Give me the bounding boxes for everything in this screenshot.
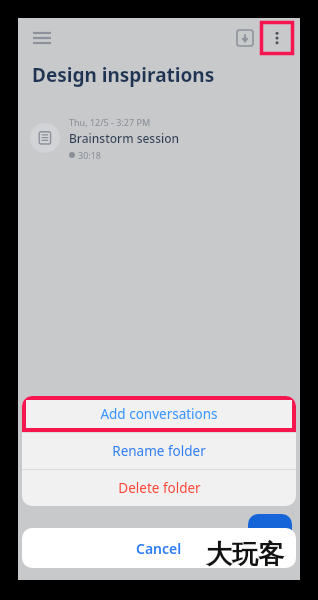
- button[interactable]: Delete folder: [22, 470, 296, 506]
- staticText: Delete folder: [118, 479, 201, 497]
- button[interactable]: Compose: [248, 514, 292, 536]
- button[interactable]: More options: [260, 21, 294, 55]
- staticText: Design inspirations: [32, 62, 215, 88]
- staticText: Brainstorm session: [69, 130, 180, 146]
- staticText: 大玩客: [206, 538, 284, 571]
- staticText: Cancel: [136, 539, 182, 558]
- staticText: Add conversations: [100, 405, 218, 423]
- button[interactable]: Menu: [26, 22, 58, 54]
- staticText: Rename folder: [112, 442, 206, 460]
- button[interactable]: Thu, 12/5 - 3:27 PM: [18, 110, 300, 166]
- button[interactable]: Cancel: [22, 528, 296, 568]
- staticText: 30:18: [78, 149, 102, 161]
- button[interactable]: Download: [230, 23, 260, 53]
- button[interactable]: Rename folder: [22, 433, 296, 469]
- staticText: Thu, 12/5 - 3:27 PM: [69, 116, 151, 128]
- button[interactable]: Add conversations: [22, 396, 296, 432]
